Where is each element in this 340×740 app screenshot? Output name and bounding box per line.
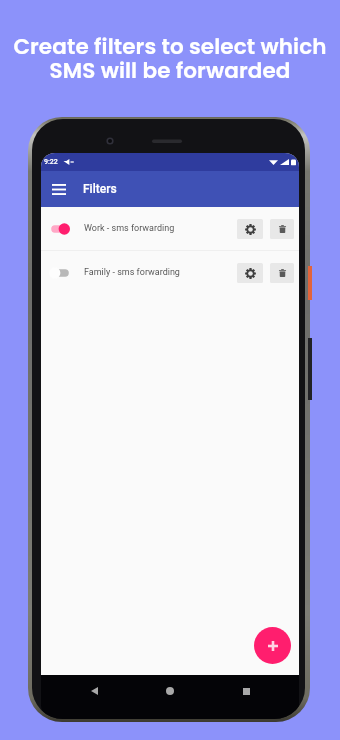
button[interactable]: Add filter — [254, 627, 291, 664]
staticText: 9:22 — [44, 158, 58, 166]
button[interactable]: Open navigation menu — [48, 178, 70, 200]
button[interactable]: Home — [154, 675, 186, 707]
staticText: Work - sms forwarding — [84, 223, 175, 234]
staticText: Family - sms forwarding — [84, 267, 180, 278]
button[interactable]: Delete filter — [270, 219, 294, 239]
button[interactable]: Back — [78, 675, 110, 707]
button[interactable]: Recent apps — [230, 675, 262, 707]
staticText: Filters — [83, 182, 117, 196]
button[interactable]: Work - sms forwarding — [41, 207, 299, 250]
staticText: Create filters to select which SMS will … — [13, 31, 327, 85]
button[interactable]: Family - sms forwarding — [41, 251, 299, 294]
button[interactable]: Edit filter settings — [237, 263, 263, 283]
button[interactable]: Edit filter settings — [237, 219, 263, 239]
button[interactable]: Delete filter — [270, 263, 294, 283]
